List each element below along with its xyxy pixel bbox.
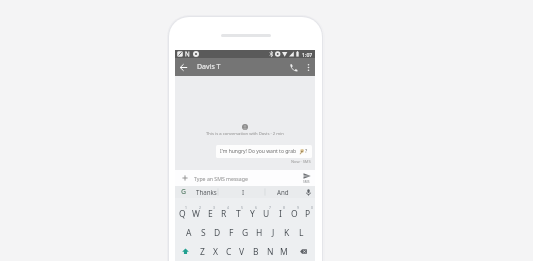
- staticText: Z: [200, 246, 205, 258]
- staticText: B: [253, 246, 259, 258]
- staticText: D: [214, 227, 221, 239]
- button[interactable]: Thanks: [187, 186, 225, 198]
- staticText: K: [284, 227, 290, 239]
- staticText: Y: [250, 208, 255, 220]
- staticText: W: [192, 208, 200, 220]
- button[interactable]: N: [263, 242, 277, 261]
- staticText: C: [226, 246, 232, 258]
- staticText: Q: [179, 208, 186, 220]
- button[interactable]: More options: [301, 58, 315, 76]
- button[interactable]: O: [287, 204, 301, 223]
- staticText: M: [280, 246, 288, 258]
- staticText: X: [213, 246, 218, 258]
- button[interactable]: G: [238, 223, 252, 242]
- button[interactable]: X: [209, 242, 222, 261]
- staticText: This is a conversation with Davis · 2 mi…: [206, 131, 284, 137]
- button[interactable]: C: [222, 242, 235, 261]
- staticText: SMS: [303, 180, 310, 184]
- button[interactable]: M: [277, 242, 291, 261]
- staticText: G: [242, 227, 249, 239]
- button[interactable]: And: [264, 186, 302, 198]
- staticText: 8: [283, 205, 285, 210]
- staticText: 5: [241, 205, 243, 210]
- button[interactable]: K: [280, 223, 294, 242]
- staticText: T: [236, 208, 241, 220]
- button[interactable]: Z: [196, 242, 209, 261]
- button[interactable]: U: [259, 204, 273, 223]
- staticText: P: [305, 208, 311, 220]
- button[interactable]: Backspace: [291, 242, 315, 261]
- button[interactable]: Y: [245, 204, 259, 223]
- staticText: 3: [213, 205, 215, 210]
- button[interactable]: L: [294, 223, 308, 242]
- button[interactable]: B: [249, 242, 263, 261]
- button[interactable]: J: [266, 223, 280, 242]
- staticText: Thanks: [196, 188, 217, 196]
- button[interactable]: R: [217, 204, 231, 223]
- staticText: 6: [255, 205, 257, 210]
- button[interactable]: V: [235, 242, 249, 261]
- button[interactable]: I: [273, 204, 287, 223]
- staticText: I: [242, 188, 245, 196]
- staticText: H: [256, 227, 263, 239]
- button[interactable]: Shift: [175, 242, 196, 261]
- staticText: ?: [305, 148, 308, 155]
- staticText: E: [208, 208, 213, 220]
- staticText: 4: [227, 205, 229, 210]
- button[interactable]: T: [231, 204, 245, 223]
- button[interactable]: Q: [175, 204, 189, 223]
- staticText: J: [272, 227, 275, 239]
- button[interactable]: Voice input: [302, 186, 315, 198]
- staticText: 1:07: [302, 51, 313, 58]
- staticText: 1: [185, 205, 187, 210]
- button[interactable]: D: [210, 223, 224, 242]
- staticText: A: [186, 227, 192, 239]
- staticText: F: [229, 227, 234, 239]
- staticText: R: [221, 208, 227, 220]
- staticText: G: [181, 187, 187, 197]
- button[interactable]: Back: [175, 58, 192, 76]
- button[interactable]: W: [189, 204, 203, 223]
- staticText: U: [263, 208, 270, 220]
- staticText: O: [291, 208, 298, 220]
- staticText: S: [201, 227, 206, 239]
- staticText: L: [299, 227, 304, 239]
- staticText: I: [279, 208, 282, 220]
- button[interactable]: Add attachment: [175, 170, 194, 186]
- staticText: Now · SMS: [291, 159, 311, 164]
- button[interactable]: I'm hungry! Do you want to grab: [216, 145, 312, 158]
- button[interactable]: F: [224, 223, 238, 242]
- button[interactable]: A: [182, 223, 196, 242]
- button[interactable]: H: [252, 223, 266, 242]
- staticText: Type an SMS message: [194, 175, 248, 182]
- button[interactable]: P: [301, 204, 315, 223]
- button[interactable]: S: [196, 223, 210, 242]
- staticText: V: [239, 246, 245, 258]
- staticText: N: [267, 246, 274, 258]
- staticText: 2: [199, 205, 201, 210]
- button[interactable]: Send SMS: [298, 170, 315, 186]
- button[interactable]: I: [224, 186, 262, 198]
- button[interactable]: E: [203, 204, 217, 223]
- button[interactable]: Call: [285, 58, 301, 76]
- staticText: I'm hungry! Do you want to grab: [220, 148, 298, 155]
- staticText: 9: [297, 205, 299, 210]
- staticText: 7: [269, 205, 271, 210]
- staticText: Davis T: [197, 62, 221, 72]
- staticText: And: [277, 188, 289, 196]
- staticText: 0: [311, 205, 313, 210]
